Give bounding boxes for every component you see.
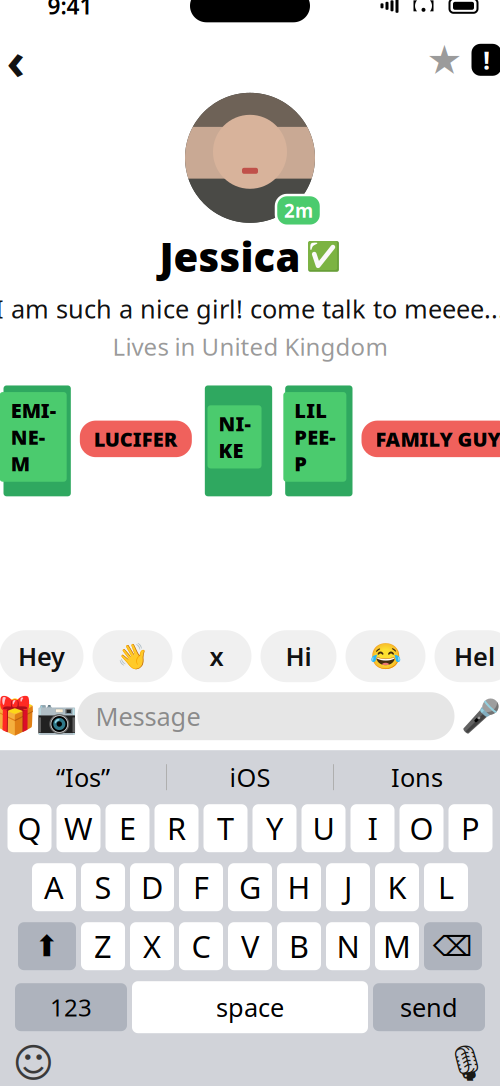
button[interactable]: ⬆ (18, 922, 76, 970)
button[interactable]: “Ios” (0, 755, 166, 799)
staticText: E (119, 808, 136, 848)
button[interactable]: J (326, 863, 370, 911)
button[interactable]: S (81, 863, 125, 911)
button[interactable]: space (132, 981, 368, 1033)
button[interactable]: FAMILY GUY (361, 421, 500, 457)
staticText: W (64, 808, 93, 848)
staticText: I am such a nice girl! come talk to meee… (0, 292, 500, 325)
button[interactable]: Hel (434, 630, 500, 682)
staticText: ★ (426, 37, 462, 82)
staticText: S (94, 867, 111, 907)
staticText: Message (95, 699, 200, 733)
staticText: ⬆ (34, 929, 59, 963)
staticText: 📷 (35, 697, 77, 735)
staticText: 🎁 (0, 696, 37, 737)
button[interactable]: R (154, 804, 198, 852)
staticText: 🎤 (460, 698, 500, 734)
staticText: X (143, 926, 161, 966)
button[interactable]: C (179, 922, 223, 970)
staticText: A (44, 867, 64, 907)
staticText: M (383, 926, 411, 966)
button[interactable]: Message (77, 692, 454, 740)
button[interactable]: A (32, 863, 76, 911)
staticText: ✅ (305, 240, 340, 272)
staticText: 😂 (369, 642, 401, 671)
button[interactable]: B (277, 922, 321, 970)
button[interactable]: LUCIFER (80, 421, 192, 457)
button[interactable]: Report (466, 38, 500, 82)
button[interactable]: F (179, 863, 223, 911)
button[interactable]: 👋 (92, 630, 172, 682)
button[interactable]: M (375, 922, 419, 970)
button[interactable]: Dictate (442, 1039, 490, 1086)
staticText: 🎙 (444, 1043, 488, 1083)
button[interactable]: L (424, 863, 468, 911)
button[interactable]: Q (7, 804, 51, 852)
staticText: iOS (229, 760, 270, 794)
button[interactable]: Hi (260, 630, 336, 682)
button[interactable]: Y (252, 804, 296, 852)
button[interactable]: O (399, 804, 443, 852)
button[interactable]: Favorite (422, 38, 466, 82)
staticText: T (217, 808, 234, 848)
button[interactable]: T (203, 804, 247, 852)
button[interactable]: ⌫ (424, 922, 482, 970)
button[interactable]: N (326, 922, 370, 970)
button[interactable]: LIL PEEP (281, 381, 352, 496)
staticText: ☺ (12, 1040, 54, 1086)
button[interactable]: x (181, 630, 251, 682)
button[interactable]: D (130, 863, 174, 911)
button[interactable]: P (448, 804, 492, 852)
staticText: I (367, 808, 377, 848)
button[interactable]: iOS (167, 755, 333, 799)
button[interactable]: E (105, 804, 149, 852)
button[interactable]: Send a gift (0, 694, 35, 738)
staticText: ⌫ (433, 930, 473, 962)
staticText: NIKE (218, 410, 250, 463)
button[interactable]: Hey (0, 630, 83, 682)
staticText: F (193, 867, 209, 907)
button[interactable]: I (350, 804, 394, 852)
button[interactable]: NIKE (201, 381, 272, 496)
button[interactable]: U (301, 804, 345, 852)
staticText: U (312, 808, 334, 848)
staticText: “Ios” (56, 760, 110, 794)
staticText: EMINEM (11, 397, 56, 477)
staticText: Hey (18, 639, 65, 673)
button[interactable]: Z (81, 922, 125, 970)
staticText: 👋 (116, 642, 148, 671)
staticText: Z (94, 926, 112, 966)
button[interactable]: 123 (15, 983, 127, 1031)
staticText: 9:41 (47, 0, 92, 21)
staticText: Jessica (159, 230, 300, 283)
staticText: O (409, 808, 433, 848)
button[interactable]: W (56, 804, 100, 852)
button[interactable]: K (375, 863, 419, 911)
button[interactable]: Back (0, 38, 37, 82)
button[interactable]: G (228, 863, 272, 911)
button[interactable]: send (373, 983, 485, 1031)
button[interactable]: EMINEM (0, 381, 71, 496)
staticText: H (287, 867, 310, 907)
staticText: R (167, 808, 186, 848)
button[interactable]: 😂 (345, 630, 425, 682)
button[interactable]: Camera (35, 694, 77, 738)
staticText: Q (17, 808, 41, 848)
staticText: Y (266, 808, 283, 848)
staticText: L (438, 867, 454, 907)
button[interactable]: Emoji (9, 1039, 57, 1086)
staticText: 123 (50, 991, 92, 1023)
button[interactable]: V (228, 922, 272, 970)
staticText: B (289, 926, 309, 966)
staticText: Lives in United Kingdom (112, 331, 387, 362)
button[interactable]: Voice message (454, 694, 500, 738)
button[interactable]: H (277, 863, 321, 911)
button[interactable]: X (130, 922, 174, 970)
staticText: Hel (454, 639, 495, 673)
staticText: send (400, 990, 458, 1024)
staticText: V (241, 926, 259, 966)
staticText: x (209, 639, 223, 673)
staticText: P (461, 808, 480, 848)
staticText: ‹ (6, 26, 24, 93)
button[interactable]: Ions (334, 755, 500, 799)
